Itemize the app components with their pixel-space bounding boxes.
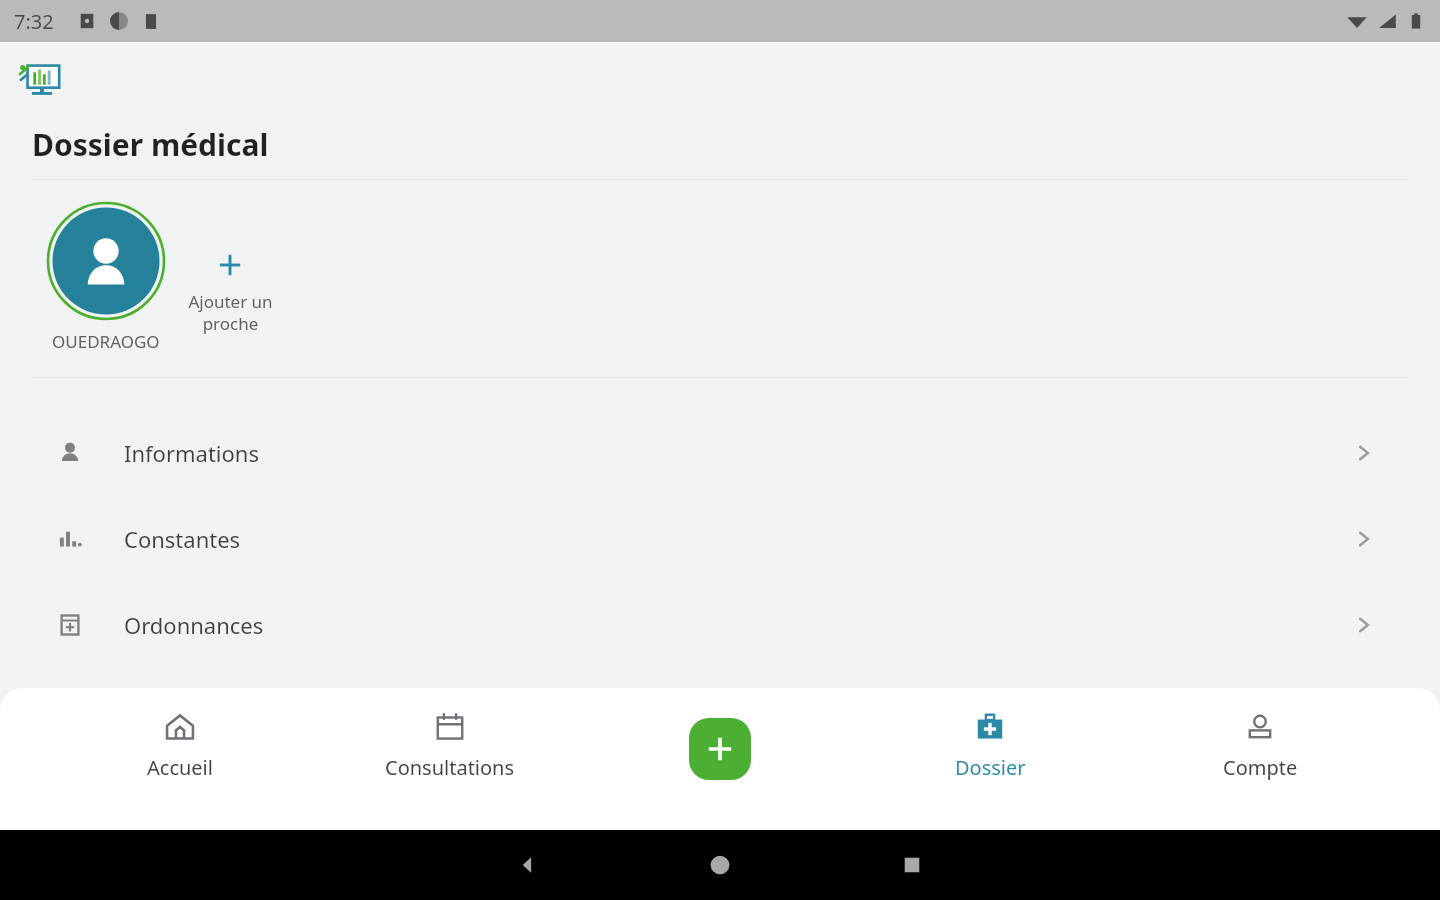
staticText: Constantes xyxy=(124,524,241,554)
button[interactable]: Home xyxy=(624,852,816,878)
other: Ajouter un proche xyxy=(213,248,247,282)
button[interactable]: Compte xyxy=(1170,706,1350,785)
staticText: Dossier médical xyxy=(32,124,269,165)
staticText: Accueil xyxy=(147,754,213,781)
button[interactable]: Recents xyxy=(816,852,1008,878)
button[interactable]: OUEDRAOGO xyxy=(47,202,165,353)
button[interactable]: Accueil xyxy=(90,706,270,785)
button[interactable]: Informations xyxy=(0,410,1440,496)
button[interactable]: Dossier xyxy=(900,706,1080,785)
button[interactable]: Ajouter un proche xyxy=(175,248,285,335)
staticText: OUEDRAOGO xyxy=(52,330,160,353)
button[interactable]: Consultations xyxy=(360,706,540,785)
staticText: Compte xyxy=(1223,754,1298,781)
staticText: Ordonnances xyxy=(124,610,264,640)
button[interactable]: Back xyxy=(432,852,624,878)
staticText: Ajouter un proche xyxy=(188,290,273,335)
staticText: Consultations xyxy=(385,754,515,781)
staticText: Dossier xyxy=(955,754,1026,781)
button[interactable]: Ordonnances xyxy=(0,582,1440,668)
button[interactable]: Constantes xyxy=(0,496,1440,582)
staticText: Informations xyxy=(124,438,259,468)
button[interactable]: Ajouter xyxy=(689,718,751,780)
staticText: 7:32 xyxy=(14,8,54,35)
